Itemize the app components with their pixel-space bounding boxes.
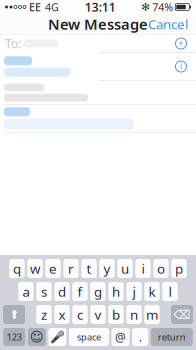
button[interactable]: Dictate xyxy=(48,328,66,346)
button[interactable]: return xyxy=(151,328,193,346)
staticText: e xyxy=(49,260,57,277)
staticText: 13:11 xyxy=(85,0,116,15)
staticText: s xyxy=(41,283,47,300)
staticText: j xyxy=(132,283,135,300)
button[interactable]: h xyxy=(108,282,124,301)
button[interactable]: p xyxy=(171,259,187,278)
staticText: EE xyxy=(29,0,41,14)
button[interactable]: @ xyxy=(112,328,130,346)
button[interactable] xyxy=(0,80,196,105)
staticText: To: xyxy=(5,35,21,51)
staticText: g xyxy=(94,283,102,300)
button[interactable]: l xyxy=(162,282,178,301)
button[interactable]: f xyxy=(72,282,88,301)
staticText: v xyxy=(94,306,101,323)
staticText: y xyxy=(103,260,110,277)
button[interactable]: Emoji xyxy=(28,328,46,346)
button[interactable]: b xyxy=(108,305,124,324)
staticText: b xyxy=(112,306,120,323)
staticText: + xyxy=(178,38,183,49)
staticText: k xyxy=(148,283,155,300)
staticText: q xyxy=(13,260,21,277)
button[interactable]: t xyxy=(81,259,97,278)
staticText: @ xyxy=(115,329,126,345)
button[interactable]: q xyxy=(9,259,25,278)
staticText: h xyxy=(112,283,120,300)
staticText: u xyxy=(121,260,129,277)
staticText: space xyxy=(77,331,101,343)
staticText: 123 xyxy=(7,331,22,343)
button[interactable]: a xyxy=(18,282,34,301)
staticText: r xyxy=(68,260,74,277)
staticText: ⬆ xyxy=(9,308,19,321)
staticText: ☺ xyxy=(30,329,44,344)
button[interactable] xyxy=(0,105,196,132)
staticText: l xyxy=(168,283,171,300)
button[interactable]: s xyxy=(36,282,52,301)
button[interactable]: Add contact xyxy=(171,33,191,53)
button[interactable]: Shift xyxy=(3,305,25,324)
button[interactable]: j xyxy=(126,282,142,301)
button[interactable]: z xyxy=(36,305,52,324)
staticText: z xyxy=(41,306,47,323)
button[interactable]: More info xyxy=(171,56,191,76)
staticText: i xyxy=(180,61,182,72)
staticText: p xyxy=(175,260,183,277)
button[interactable]: m xyxy=(144,305,160,324)
button[interactable]: r xyxy=(63,259,79,278)
staticText: t xyxy=(86,260,91,277)
button[interactable]: i xyxy=(135,259,151,278)
staticText: 🎤 xyxy=(50,330,65,344)
button[interactable]: Cancel xyxy=(142,11,194,37)
button[interactable]: u xyxy=(117,259,133,278)
button[interactable]: c xyxy=(72,305,88,324)
staticText: . xyxy=(139,329,142,345)
button[interactable]: o xyxy=(153,259,169,278)
staticText: 4G xyxy=(45,0,59,14)
button[interactable]: Delete xyxy=(171,305,193,324)
staticText: x xyxy=(58,306,65,323)
staticText: w xyxy=(30,260,40,277)
staticText: return xyxy=(158,331,186,343)
staticText: a xyxy=(22,283,29,300)
staticText: ✻ xyxy=(141,1,150,13)
button[interactable]: g xyxy=(90,282,106,301)
staticText: f xyxy=(77,283,82,300)
button[interactable]: space xyxy=(69,328,109,346)
button[interactable]: v xyxy=(90,305,106,324)
staticText: 74% xyxy=(152,0,173,14)
staticText: Cancel xyxy=(148,15,188,33)
staticText: i xyxy=(141,260,144,277)
staticText: c xyxy=(77,306,83,323)
button[interactable]: x xyxy=(54,305,70,324)
button[interactable]: k xyxy=(144,282,160,301)
staticText: o xyxy=(157,260,165,277)
button[interactable]: . xyxy=(132,328,148,346)
button[interactable]: d xyxy=(54,282,70,301)
staticText: m xyxy=(146,306,158,323)
button[interactable]: e xyxy=(45,259,61,278)
staticText: ⌫ xyxy=(173,308,190,321)
staticText: n xyxy=(130,306,138,323)
button[interactable]: y xyxy=(99,259,115,278)
button[interactable]: i xyxy=(0,53,196,80)
button[interactable]: 123 xyxy=(3,328,25,346)
staticText: d xyxy=(58,283,66,300)
button[interactable]: n xyxy=(126,305,142,324)
button[interactable]: w xyxy=(27,259,43,278)
staticText: New Message xyxy=(48,14,148,34)
